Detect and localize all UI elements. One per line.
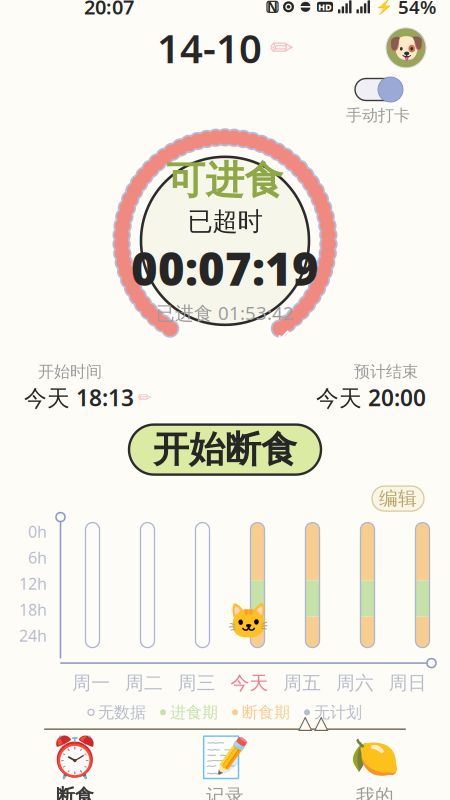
staticText: 断食期 (242, 702, 290, 722)
staticText: 14-10 (157, 21, 262, 74)
staticText: ✏ (138, 388, 151, 407)
staticText: 我的 (356, 785, 394, 800)
button[interactable]: 编辑 (372, 486, 424, 511)
button[interactable]: ⏰ (0, 737, 150, 800)
staticText: 无计划 (314, 702, 362, 722)
staticText: ⏰ (50, 735, 100, 781)
staticText: 开始断食 (153, 427, 297, 472)
staticText: 今天 20:00 (316, 382, 426, 413)
staticText: ✏ (270, 32, 293, 64)
staticText: ▲ (314, 712, 328, 733)
staticText: 记录 (206, 785, 244, 800)
staticText: 18h (19, 599, 47, 620)
staticText: 已进食 01:53:42 (156, 300, 294, 325)
staticText: 已超时 (187, 206, 262, 237)
staticText: 00:07:19 (131, 238, 319, 298)
staticText: 断食 (56, 785, 94, 800)
staticText: ▲ (298, 712, 312, 733)
button[interactable]: 开始断食 (129, 425, 321, 475)
staticText: 周日 (389, 672, 427, 694)
staticText: 进食期 (170, 702, 218, 722)
staticText: 周五 (283, 672, 321, 694)
staticText: 今天 (230, 672, 268, 694)
staticText: 周一 (72, 672, 110, 694)
staticText: △ (298, 712, 312, 733)
staticText: 编辑 (379, 487, 417, 510)
button[interactable]: 手动打卡 (346, 76, 410, 125)
button[interactable]: Profile (386, 28, 426, 68)
staticText: 周二 (125, 672, 163, 694)
staticText: ⚡ (375, 0, 393, 15)
staticText: HD (318, 1, 332, 13)
staticText: 6h (28, 547, 47, 568)
staticText: 预计结束 (354, 362, 418, 381)
staticText: 开始时间 (38, 362, 102, 381)
staticText: 可进食 (166, 156, 283, 204)
staticText: 🐱 (227, 602, 270, 641)
staticText: 24h (19, 625, 47, 646)
staticText: 周六 (336, 672, 374, 694)
staticText: 周三 (178, 672, 216, 694)
staticText: 20:07 (84, 0, 134, 20)
staticText: ↙ (276, 326, 291, 346)
button[interactable]: 14-10 (157, 21, 293, 74)
staticText: 📝 (200, 735, 250, 781)
staticText: 无数据 (98, 702, 146, 722)
staticText: N (267, 0, 278, 16)
button[interactable]: 🍋 (300, 737, 450, 800)
staticText: 0h (28, 521, 47, 542)
staticText: 手动打卡 (346, 105, 410, 125)
button[interactable]: 📝 (150, 737, 300, 800)
staticText: 今天 18:13 (24, 382, 134, 413)
button[interactable]: 开始时间 (24, 362, 151, 413)
staticText: 54% (398, 0, 436, 19)
staticText: △ (314, 712, 328, 733)
staticText: 🍋 (350, 735, 400, 781)
staticText: 12h (19, 573, 47, 594)
staticText: 🐶 (387, 31, 424, 65)
